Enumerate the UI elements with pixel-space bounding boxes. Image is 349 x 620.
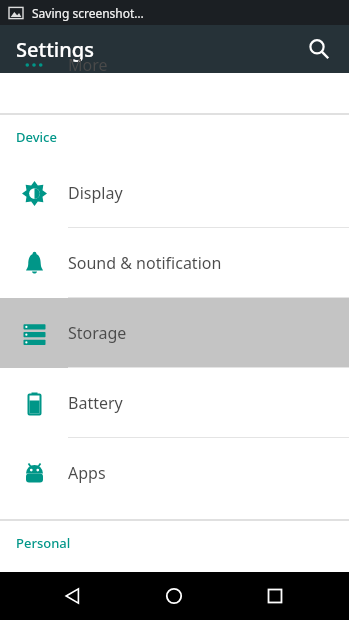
staticText: Device — [16, 128, 57, 146]
button[interactable]: Apps — [0, 438, 349, 508]
staticText: Sound & notification — [68, 252, 222, 274]
button[interactable]: Back — [51, 574, 95, 618]
button[interactable]: Home — [152, 574, 196, 618]
staticText: Personal — [16, 534, 71, 552]
button[interactable]: Search — [297, 27, 341, 71]
staticText: Apps — [68, 462, 106, 484]
button[interactable]: Sound & notification — [0, 228, 349, 298]
staticText: Battery — [68, 392, 123, 414]
button[interactable]: Storage — [0, 298, 349, 368]
staticText: Display — [68, 182, 123, 204]
staticText: More — [68, 54, 108, 76]
staticText: Storage — [68, 322, 127, 344]
staticText: Saving screenshot… — [32, 5, 144, 21]
button[interactable]: Recents — [253, 574, 297, 618]
staticText: Settings — [16, 36, 94, 63]
button[interactable]: Battery — [0, 368, 349, 438]
button[interactable]: Display — [0, 158, 349, 228]
